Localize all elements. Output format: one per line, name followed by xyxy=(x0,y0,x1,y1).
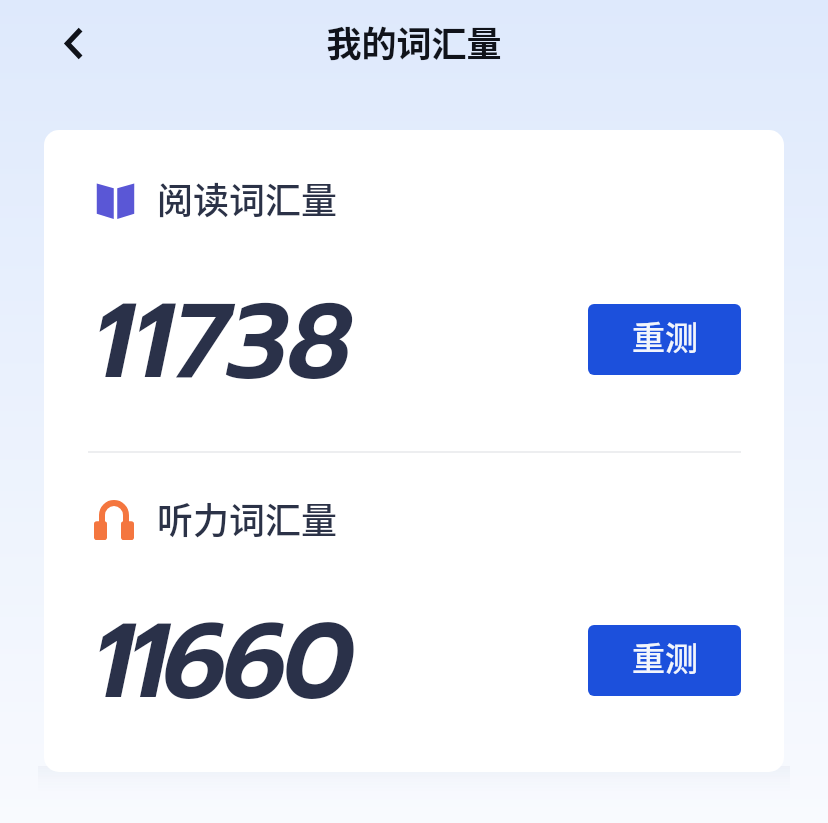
staticText: 重测 xyxy=(632,633,698,681)
staticText: 11660 xyxy=(92,584,349,741)
button[interactable]: 重测 xyxy=(588,304,741,375)
staticText: 11738 xyxy=(92,264,352,421)
staticText: 重测 xyxy=(632,312,698,360)
staticText: 听力词汇量 xyxy=(157,492,338,544)
staticText: 阅读词汇量 xyxy=(157,172,338,224)
button[interactable]: Back xyxy=(43,18,93,68)
button[interactable]: 重测 xyxy=(588,625,741,696)
staticText: 我的词汇量 xyxy=(0,16,828,67)
